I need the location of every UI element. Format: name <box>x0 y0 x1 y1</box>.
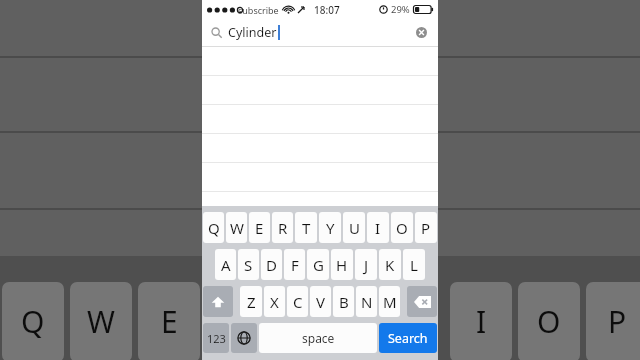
button[interactable]: O <box>391 212 413 243</box>
button[interactable]: A <box>215 249 236 280</box>
staticText: I <box>476 301 487 342</box>
staticText: E <box>161 301 178 342</box>
button[interactable] <box>202 134 438 163</box>
button[interactable]: 123 <box>203 323 229 353</box>
button[interactable]: Y <box>319 212 341 243</box>
staticText: L <box>410 255 418 275</box>
staticText: R <box>278 218 288 238</box>
button[interactable]: K <box>379 249 401 280</box>
button[interactable]: W <box>226 212 247 243</box>
staticText: H <box>336 255 348 275</box>
button[interactable]: Shift <box>203 286 233 317</box>
button[interactable]: E <box>249 212 270 243</box>
staticText: O <box>396 218 408 238</box>
staticText: N <box>361 292 373 312</box>
button[interactable]: J <box>355 249 377 280</box>
button[interactable] <box>202 47 438 76</box>
staticText: 29% <box>391 3 410 16</box>
button[interactable]: Change keyboard <box>231 323 257 353</box>
staticText: D <box>266 255 277 275</box>
staticText: Q <box>208 218 220 238</box>
staticText: E <box>255 218 264 238</box>
button[interactable]: X <box>264 286 285 317</box>
staticText: P <box>608 301 627 342</box>
staticText: S <box>244 255 253 275</box>
button[interactable]: L <box>403 249 425 280</box>
staticText: space <box>302 330 335 346</box>
button[interactable]: H <box>331 249 353 280</box>
button[interactable]: F <box>284 249 305 280</box>
button[interactable]: Clear text <box>414 25 429 40</box>
staticText: W <box>87 301 115 342</box>
staticText: P <box>421 218 431 238</box>
button[interactable]: Z <box>240 286 262 317</box>
staticText: 123 <box>207 331 226 346</box>
button[interactable]: T <box>295 212 317 243</box>
staticText: K <box>385 255 395 275</box>
staticText: B <box>339 292 349 312</box>
staticText: I <box>375 218 381 238</box>
button[interactable]: I <box>367 212 389 243</box>
staticText: A <box>221 255 231 275</box>
button[interactable]: space <box>259 323 377 353</box>
button[interactable]: D <box>261 249 282 280</box>
button[interactable]: N <box>356 286 377 317</box>
button[interactable] <box>202 163 438 192</box>
button[interactable] <box>202 105 438 134</box>
button[interactable]: V <box>310 286 331 317</box>
staticText: 18:07 <box>314 3 340 17</box>
button[interactable]: G <box>307 249 329 280</box>
button[interactable]: Cylinder <box>202 19 438 46</box>
staticText: M <box>383 292 397 312</box>
button[interactable]: R <box>272 212 293 243</box>
staticText: C <box>293 292 303 312</box>
button[interactable]: U <box>343 212 365 243</box>
staticText: W <box>230 218 244 238</box>
button[interactable]: P <box>415 212 437 243</box>
button[interactable]: M <box>379 286 400 317</box>
button[interactable]: S <box>238 249 259 280</box>
button[interactable]: Backspace <box>407 286 437 317</box>
button[interactable]: C <box>287 286 308 317</box>
staticText: Q <box>21 301 45 342</box>
staticText: Search <box>388 330 428 347</box>
staticText: Z <box>247 292 256 312</box>
staticText: X <box>270 292 279 312</box>
staticText: T <box>302 218 311 238</box>
staticText: V <box>316 292 326 312</box>
staticText: F <box>291 255 299 275</box>
button[interactable]: Search <box>379 323 437 353</box>
button[interactable]: Q <box>203 212 224 243</box>
button[interactable]: B <box>333 286 354 317</box>
button[interactable] <box>202 76 438 105</box>
staticText: Cylinder <box>228 24 277 41</box>
staticText: J <box>364 255 369 275</box>
staticText: G <box>313 255 324 275</box>
staticText: Y <box>326 218 335 238</box>
staticText: O <box>537 301 561 342</box>
staticText: subscribe <box>238 4 279 16</box>
staticText: U <box>349 218 360 238</box>
